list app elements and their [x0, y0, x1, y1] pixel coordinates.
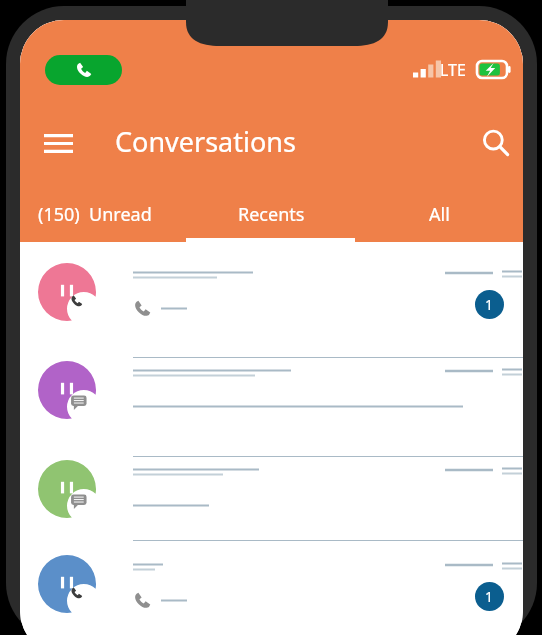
staticText: Conversations: [115, 123, 296, 160]
button[interactable]: [20, 454, 523, 540]
button[interactable]: [20, 257, 523, 357]
button[interactable]: [20, 355, 523, 456]
staticText: All: [429, 202, 450, 227]
button[interactable]: (150) Unread: [30, 188, 186, 240]
button[interactable]: Open navigation menu: [32, 117, 84, 169]
staticText: (150) Unread: [38, 202, 152, 227]
staticText: LTE: [440, 59, 466, 81]
staticText: 1: [485, 295, 494, 314]
button[interactable]: Return to call: [45, 55, 122, 85]
button[interactable]: 1 unread: [475, 290, 504, 319]
button[interactable]: Search: [468, 115, 522, 169]
button[interactable]: [20, 549, 523, 635]
staticText: 1: [485, 587, 494, 606]
button[interactable]: 1 unread: [475, 582, 504, 611]
button[interactable]: All: [356, 188, 523, 240]
button[interactable]: Recents: [186, 188, 356, 240]
staticText: Recents: [238, 202, 305, 227]
